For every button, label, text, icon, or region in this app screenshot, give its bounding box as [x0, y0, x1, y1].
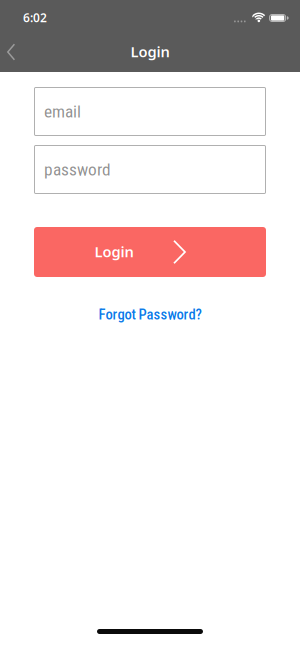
button[interactable]: email text field — [34, 87, 266, 136]
button[interactable]: Back — [0, 43, 15, 61]
staticText: Forgot Password? — [98, 306, 201, 323]
button[interactable]: Forgot Password? — [98, 308, 201, 325]
staticText: Login — [130, 42, 169, 61]
staticText: email — [44, 101, 81, 122]
button[interactable]: Login — [34, 227, 266, 277]
staticText: 6:02 — [23, 9, 47, 25]
staticText: Login — [94, 242, 133, 261]
staticText: password — [44, 159, 111, 180]
button[interactable]: password text field — [34, 145, 266, 194]
